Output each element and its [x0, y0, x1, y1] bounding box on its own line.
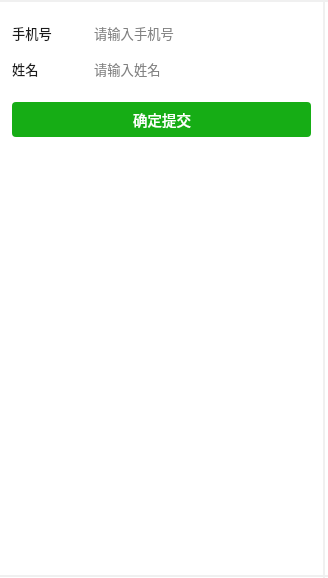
staticText: 请输入手机号: [94, 24, 174, 43]
button[interactable]: 姓名: [0, 51, 328, 87]
staticText: 姓名: [12, 60, 39, 79]
staticText: 确定提交: [133, 109, 191, 130]
button[interactable]: 手机号: [0, 15, 328, 51]
button[interactable]: 确定提交: [12, 102, 311, 137]
staticText: 请输入姓名: [94, 60, 161, 79]
staticText: 手机号: [12, 24, 52, 43]
